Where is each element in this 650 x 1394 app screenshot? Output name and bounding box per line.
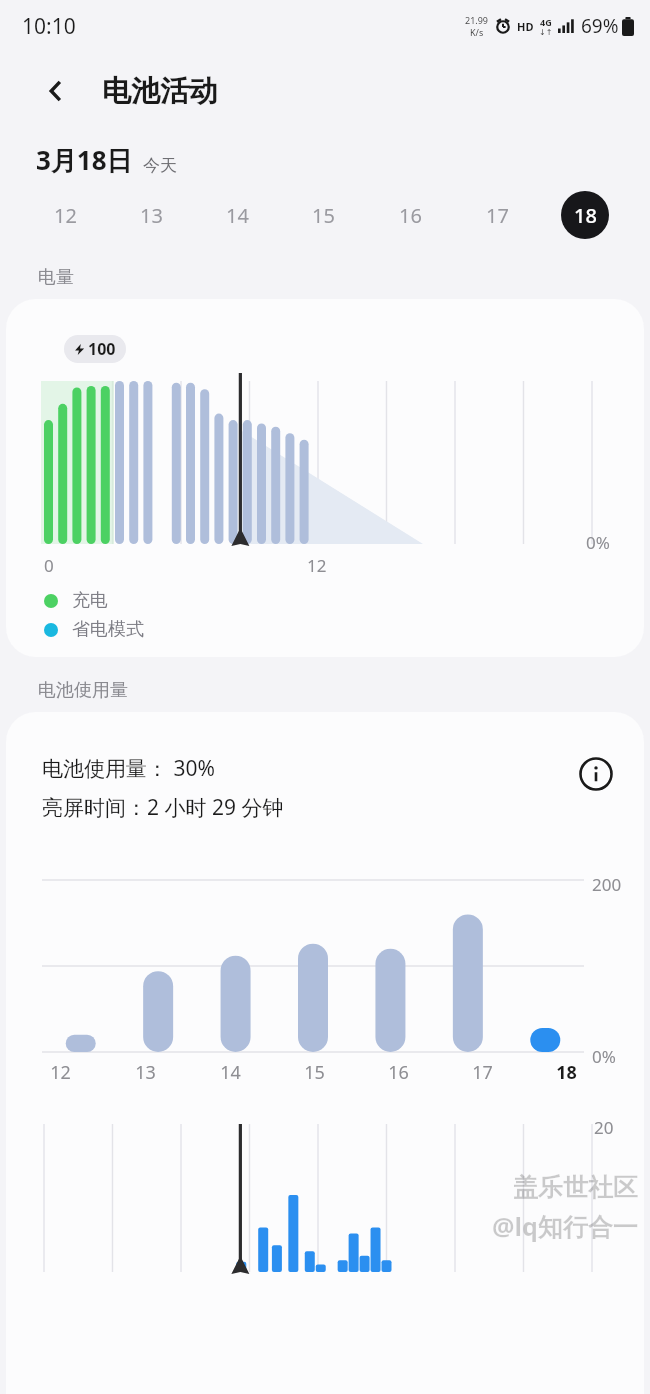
staticText: 14	[220, 1060, 241, 1085]
staticText: ↓↑	[539, 28, 553, 37]
staticText: 15	[312, 202, 335, 229]
button[interactable]: 电池使用量： 30%	[6, 712, 644, 1394]
staticText: K/s	[470, 26, 484, 38]
button[interactable]: 18	[541, 187, 628, 243]
staticText: 电池使用量	[38, 679, 128, 702]
staticText: 16	[388, 1060, 409, 1085]
staticText: 今天	[143, 155, 177, 176]
button[interactable]: 100	[6, 299, 644, 657]
staticText: 18	[556, 1060, 577, 1085]
staticText: 10:10	[22, 12, 76, 41]
staticText: 17	[472, 1060, 493, 1085]
button[interactable]: 16	[367, 187, 454, 243]
button[interactable]: 13	[108, 187, 194, 243]
staticText: 18	[574, 202, 597, 229]
staticText: 0	[44, 554, 54, 577]
staticText: 12	[307, 554, 327, 577]
staticText: 13	[135, 1060, 156, 1085]
staticText: 0%	[592, 1045, 616, 1068]
staticText: 12	[50, 1060, 71, 1085]
staticText: 17	[486, 202, 509, 229]
staticText: 省电模式	[72, 618, 144, 641]
staticText: 20	[594, 1116, 614, 1139]
button[interactable]: Back	[34, 69, 78, 113]
staticText: 13	[140, 202, 163, 229]
staticText: @lq知行合一	[492, 1209, 638, 1243]
button[interactable]: 17	[454, 187, 541, 243]
staticText: 21.99	[465, 14, 489, 26]
button[interactable]: 12	[22, 187, 108, 243]
button[interactable]: Info	[576, 754, 616, 794]
staticText: 16	[399, 202, 422, 229]
staticText: 69%	[581, 13, 619, 39]
staticText: 4G	[540, 16, 552, 28]
staticText: 亮屏时间：2 小时 29 分钟	[42, 793, 284, 822]
staticText: 电池活动	[102, 73, 218, 110]
staticText: 15	[304, 1060, 325, 1085]
staticText: 电池使用量： 30%	[42, 754, 215, 783]
staticText: 盖乐世社区	[513, 1172, 638, 1203]
staticText: 3月18日	[36, 142, 133, 178]
button[interactable]: 15	[280, 187, 367, 243]
staticText: HD	[517, 19, 534, 34]
staticText: 12	[54, 202, 77, 229]
staticText: 电量	[38, 266, 74, 289]
staticText: 100	[88, 338, 116, 360]
staticText: 0%	[586, 531, 610, 554]
staticText: 充电	[72, 589, 108, 612]
staticText: 14	[226, 202, 249, 229]
staticText: 200	[592, 873, 622, 896]
button[interactable]: 14	[194, 187, 280, 243]
